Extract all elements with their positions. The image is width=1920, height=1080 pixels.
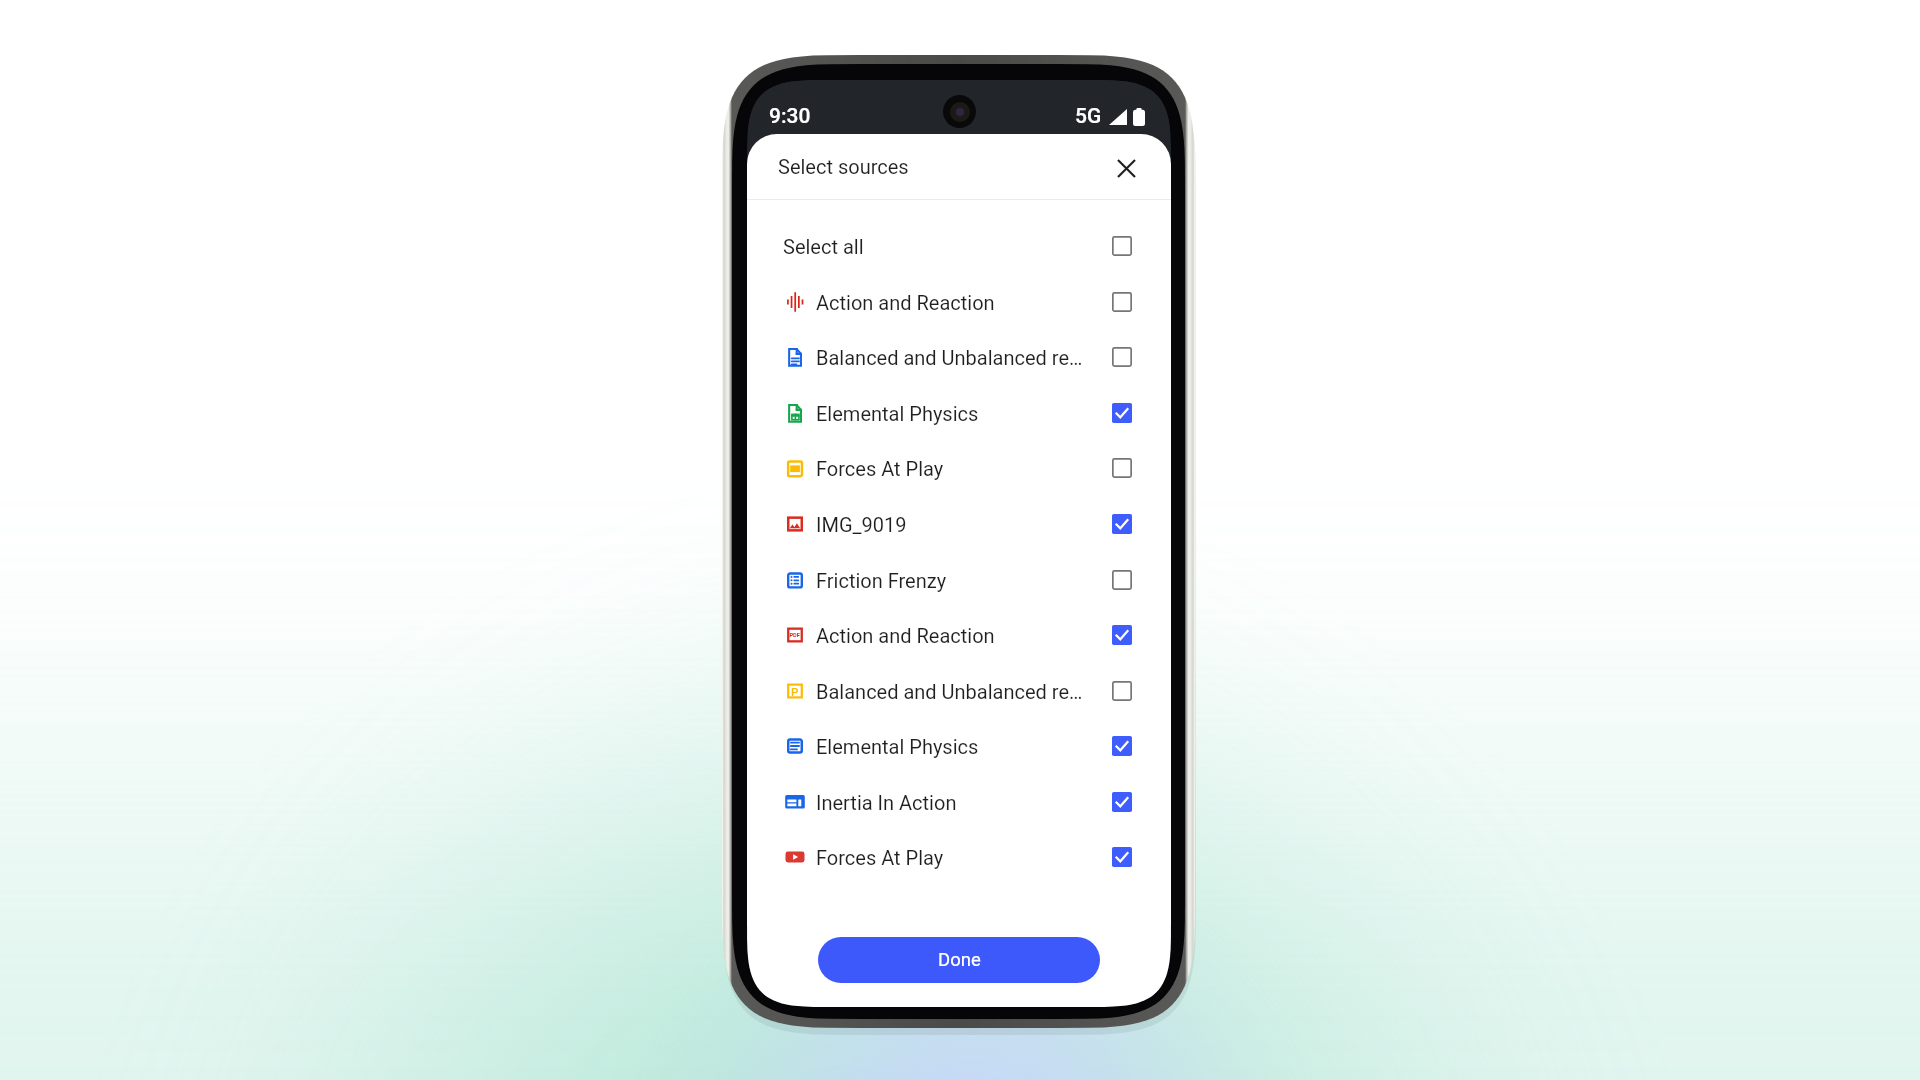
staticText: Friction Frenzy — [816, 569, 947, 592]
button[interactable]: IMG_9019 — [747, 504, 1171, 544]
staticText: Done — [938, 949, 981, 971]
button[interactable]: Balanced and Unbalanced re… — [747, 337, 1171, 377]
button[interactable]: Select all — [747, 226, 1171, 266]
staticText: IMG_9019 — [816, 513, 907, 536]
button[interactable]: Forces At Play — [747, 448, 1171, 488]
button[interactable]: Balanced and Unbalanced re… — [747, 671, 1171, 711]
button[interactable]: Inertia In Action — [747, 782, 1171, 822]
staticText: Action and Reaction — [816, 624, 995, 647]
button[interactable]: Forces At Play — [747, 837, 1171, 877]
staticText: 5G — [1075, 104, 1102, 129]
staticText: 9:30 — [769, 104, 811, 129]
button[interactable]: Friction Frenzy — [747, 560, 1171, 600]
button[interactable]: Action and Reaction — [747, 615, 1171, 655]
button[interactable]: Elemental Physics — [747, 726, 1171, 766]
staticText: Elemental Physics — [816, 735, 979, 758]
button[interactable]: Close — [1109, 151, 1143, 185]
staticText: Select sources — [778, 155, 909, 178]
staticText: Forces At Play — [816, 846, 944, 869]
button[interactable]: Done — [818, 937, 1100, 983]
staticText: Select all — [783, 235, 864, 258]
button[interactable]: Elemental Physics — [747, 393, 1171, 433]
staticText: Inertia In Action — [816, 791, 957, 814]
staticText: Balanced and Unbalanced re… — [816, 680, 1083, 703]
staticText: Elemental Physics — [816, 402, 979, 425]
staticText: Balanced and Unbalanced re… — [816, 346, 1083, 369]
staticText: Forces At Play — [816, 457, 944, 480]
button[interactable]: Action and Reaction — [747, 282, 1171, 322]
staticText: Action and Reaction — [816, 291, 995, 314]
